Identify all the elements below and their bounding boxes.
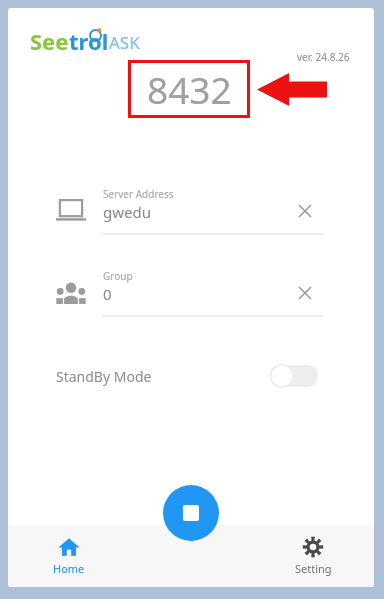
button[interactable]: Setting: [252, 525, 374, 587]
staticText: 0: [103, 284, 112, 304]
staticText: Setting: [295, 561, 332, 576]
staticText: gwedu: [103, 202, 151, 222]
button[interactable]: Stop: [163, 485, 219, 541]
button[interactable]: StandBy Mode toggle: [270, 363, 318, 389]
staticText: trol: [69, 26, 109, 56]
staticText: StandBy Mode: [56, 367, 152, 386]
staticText: See: [30, 26, 69, 56]
button[interactable]: Server Address: [8, 184, 374, 242]
button[interactable]: Home: [8, 525, 130, 587]
staticText: Home: [53, 561, 85, 576]
staticText: Group: [103, 269, 133, 283]
button[interactable]: Clear Group: [296, 284, 314, 302]
staticText: ASK: [109, 31, 140, 54]
button[interactable]: Group: [8, 266, 374, 324]
staticText: Server Address: [103, 187, 174, 201]
button[interactable]: StandBy Mode: [8, 356, 374, 396]
button[interactable]: Clear Server Address: [296, 202, 314, 220]
staticText: 8432: [147, 64, 232, 114]
staticText: ver. 24.8.26: [297, 50, 350, 64]
